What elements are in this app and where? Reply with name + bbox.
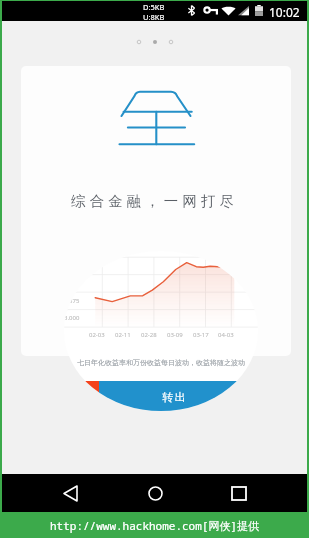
staticText: U:8KB (143, 12, 165, 22)
staticText: 03-09 (167, 331, 183, 339)
staticText: 03-17 (193, 331, 209, 339)
button[interactable]: 转出 (99, 381, 248, 411)
staticText: 04-03 (218, 331, 234, 339)
staticText: 4.575 (64, 297, 80, 305)
staticText: 02-11 (115, 331, 131, 339)
staticText: 02-28 (141, 331, 157, 339)
staticText: 10:02 (269, 4, 300, 20)
staticText: 02-03 (89, 331, 105, 339)
button[interactable]: Back (54, 477, 86, 509)
staticText: 七日年化收益率和万份收益每日波动，收益将随之波动 (64, 358, 258, 367)
staticText: D:5KB (143, 2, 165, 12)
button[interactable]: Recent apps (223, 477, 255, 509)
button[interactable]: 转入 (64, 381, 99, 411)
staticText: 3.000 (64, 314, 80, 322)
staticText: 转出 (162, 390, 186, 404)
staticText: http://www.hackhome.com[网侠]提供 (50, 518, 259, 533)
button[interactable]: Home (139, 477, 171, 509)
staticText: 综合金融，一网打尽 (2, 192, 307, 210)
